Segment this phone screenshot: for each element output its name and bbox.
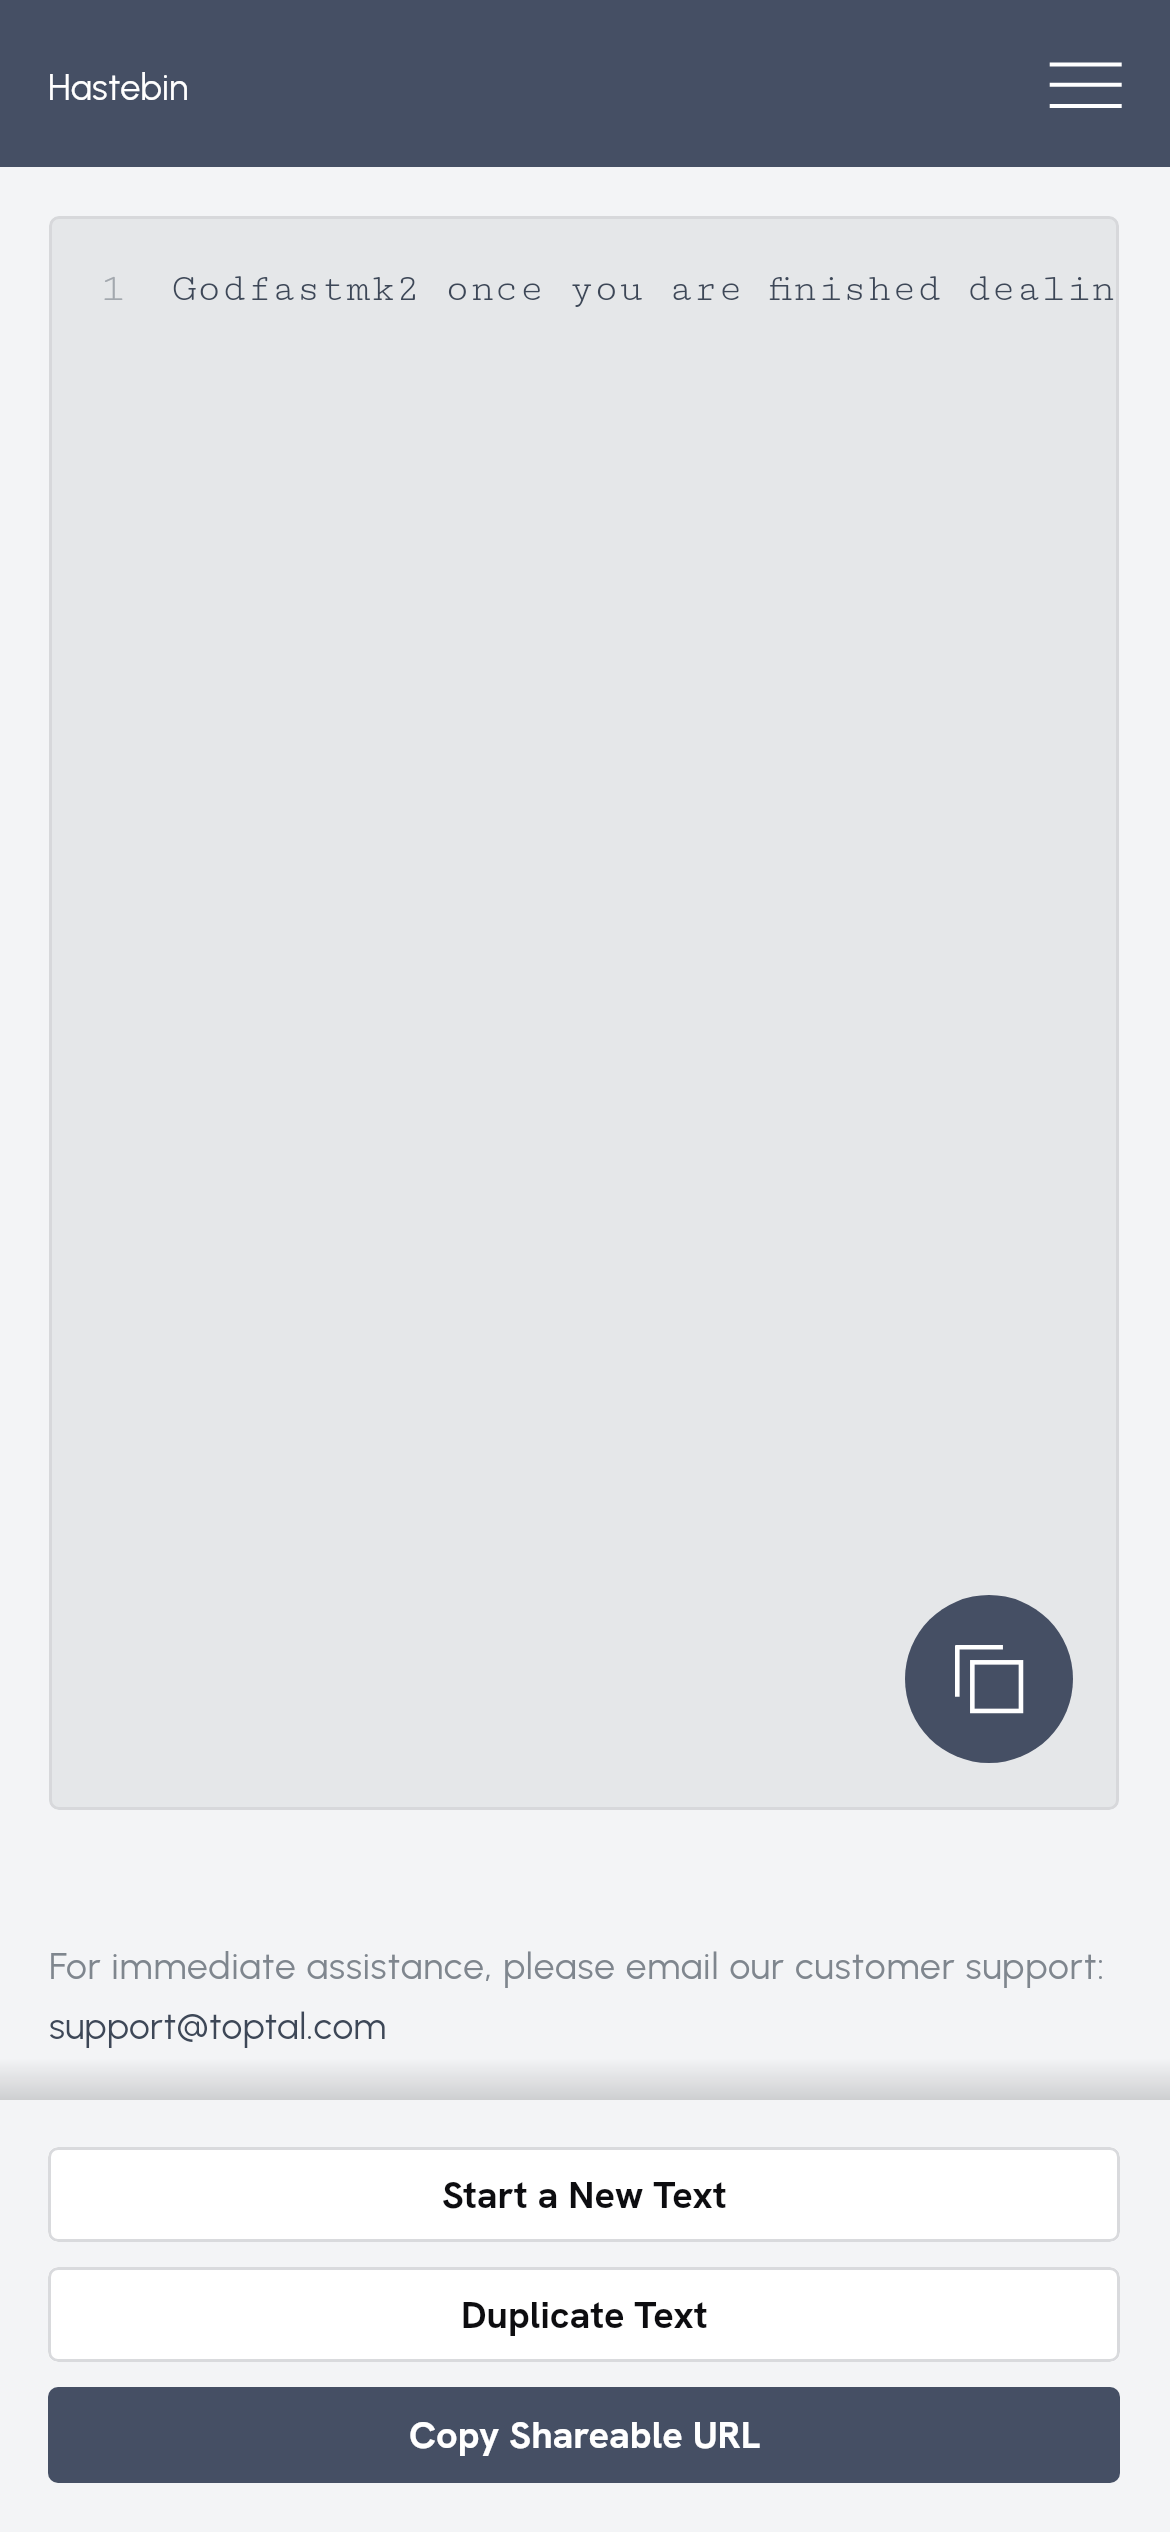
staticText: Copy Shareable URL [409, 2410, 760, 2460]
staticText: 1 [100, 266, 125, 311]
button[interactable]: Copy Shareable URL [48, 2387, 1120, 2483]
staticText: Godfastmk2 once you are finished dealing… [172, 266, 1119, 311]
button[interactable]: Open navigation menu [1048, 56, 1122, 112]
button[interactable]: Duplicate Text [48, 2267, 1120, 2362]
button[interactable]: Copy text to clipboard [905, 1595, 1073, 1763]
staticText: support@toptal.com [49, 2004, 387, 2048]
button[interactable]: Start a New Text [48, 2147, 1120, 2242]
other: Hastebin app bar [0, 0, 1170, 167]
staticText: Start a New Text [442, 2170, 727, 2220]
staticText: Hastebin [48, 66, 189, 109]
staticText: For immediate assistance, please email o… [49, 1944, 1106, 1988]
staticText: Duplicate Text [461, 2290, 708, 2340]
